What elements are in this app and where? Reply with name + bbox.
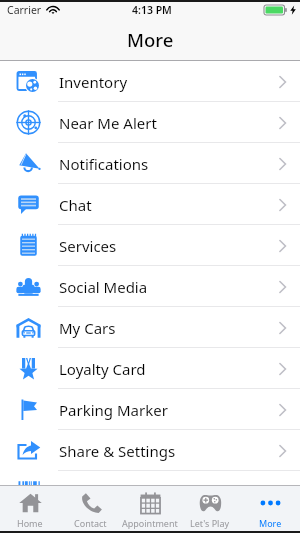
staticText: Carrier — [7, 3, 42, 17]
button[interactable]: My Cars — [0, 307, 300, 348]
staticText: Appointment — [122, 517, 178, 529]
staticText: Let's Play — [190, 517, 230, 529]
button[interactable]: Near Me Alert — [0, 102, 300, 143]
button[interactable]: Appointment — [120, 486, 180, 531]
button[interactable]: Contact — [60, 486, 120, 531]
button[interactable]: Share & Settings — [0, 430, 300, 471]
button[interactable]: Inventory — [0, 61, 300, 102]
staticText: Notifications — [59, 154, 149, 174]
button[interactable]: Home — [0, 486, 60, 531]
button[interactable]: Loyalty Card — [0, 348, 300, 389]
staticText: Services — [59, 236, 117, 256]
staticText: Parking Marker — [59, 400, 168, 420]
staticText: My Cars — [59, 318, 116, 338]
staticText: Social Media — [59, 277, 148, 297]
button[interactable]: Notifications — [0, 143, 300, 184]
staticText: More — [127, 27, 174, 52]
button[interactable]: More options — [0, 471, 300, 512]
staticText: Chat — [59, 195, 92, 215]
button[interactable]: Let's Play — [180, 486, 240, 531]
staticText: Inventory — [59, 72, 128, 92]
button[interactable]: Parking Marker — [0, 389, 300, 430]
staticText: Contact — [74, 517, 107, 529]
staticText: 4:13 PM — [132, 3, 172, 17]
staticText: Near Me Alert — [59, 113, 157, 133]
staticText: Home — [17, 517, 43, 529]
button[interactable]: More — [240, 486, 300, 531]
staticText: More — [259, 517, 282, 529]
staticText: Share & Settings — [59, 441, 176, 461]
staticText: Loyalty Card — [59, 359, 146, 379]
button[interactable]: Social Media — [0, 266, 300, 307]
button[interactable]: Chat — [0, 184, 300, 225]
button[interactable]: Services — [0, 225, 300, 266]
